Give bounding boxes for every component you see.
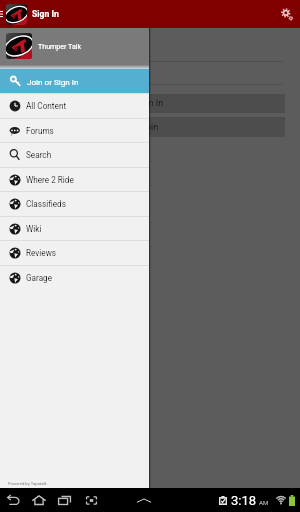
staticText: Reviews: [26, 248, 57, 258]
staticText: Classifieds: [26, 199, 66, 209]
staticText: Search: [26, 150, 52, 160]
button[interactable]: Search: [0, 143, 149, 167]
button[interactable]: Reviews: [0, 241, 149, 265]
staticText: Sign In: [136, 98, 164, 109]
staticText: Garage: [26, 273, 53, 283]
button[interactable]: Sign In: [15, 94, 285, 113]
button[interactable]: All Content: [0, 94, 149, 118]
staticText: Join or Sign In: [27, 77, 79, 86]
staticText: Forums: [26, 126, 54, 136]
button[interactable]: Open navigation drawer: [0, 0, 27, 28]
staticText: Where 2 Ride: [26, 175, 74, 185]
button[interactable]: Where 2 Ride: [0, 168, 149, 191]
staticText: Powered by Tapatalk: [8, 481, 47, 486]
button[interactable]: Thumper Talk: [0, 28, 149, 64]
staticText: Join: [141, 122, 159, 133]
button[interactable]: Recent apps: [55, 488, 75, 512]
button[interactable]: Wiki: [0, 217, 149, 240]
button[interactable]: Forums: [0, 119, 149, 142]
staticText: AM: [259, 499, 269, 506]
staticText: 3:18: [231, 493, 257, 508]
button[interactable]: Join or Sign In: [0, 69, 149, 93]
button[interactable]: Settings: [274, 0, 300, 28]
button[interactable]: Back: [3, 488, 23, 512]
staticText: All Content: [26, 101, 67, 111]
button[interactable]: Screenshot: [81, 488, 101, 512]
button[interactable]: Classifieds: [0, 192, 149, 216]
staticText: Sign In: [32, 9, 59, 19]
staticText: Thumper Talk: [38, 42, 82, 50]
button[interactable]: Home: [29, 488, 49, 512]
staticText: Wiki: [26, 224, 42, 234]
button[interactable]: Notifications: [134, 488, 154, 512]
button[interactable]: Garage: [0, 266, 149, 289]
button[interactable]: Join: [15, 117, 285, 137]
